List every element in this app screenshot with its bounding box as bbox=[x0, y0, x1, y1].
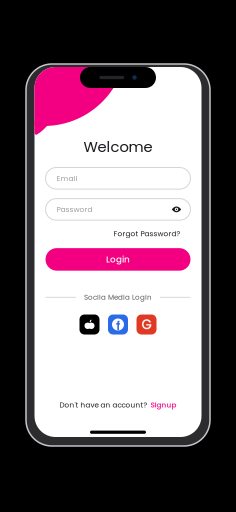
button[interactable]: Sign in with Google bbox=[136, 314, 156, 334]
button[interactable]: Email bbox=[45, 167, 190, 189]
button[interactable]: Sign in with Facebook bbox=[108, 314, 128, 334]
staticText: Signup bbox=[150, 400, 176, 410]
staticText: G bbox=[141, 315, 151, 334]
staticText: Login bbox=[106, 253, 130, 265]
button[interactable]: Login bbox=[45, 248, 190, 271]
button[interactable]: Sign in with Apple bbox=[79, 314, 99, 334]
button[interactable]: Signup bbox=[150, 400, 176, 410]
button[interactable]: Forgot Password? bbox=[113, 228, 180, 239]
staticText: Forgot Password? bbox=[113, 228, 180, 239]
staticText: Email bbox=[56, 173, 77, 184]
button[interactable]: Password bbox=[45, 199, 190, 220]
staticText: Welcome bbox=[83, 136, 152, 157]
staticText: Don't have an account? bbox=[59, 400, 147, 410]
staticText: Password bbox=[56, 204, 92, 215]
staticText: Socila Media Login bbox=[84, 292, 152, 302]
